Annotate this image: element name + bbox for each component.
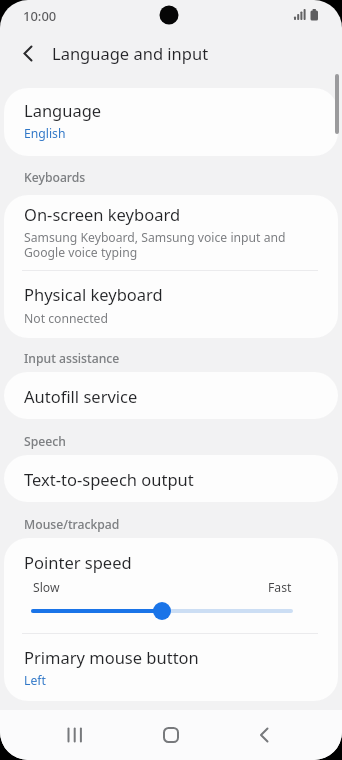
staticText: Physical keyboard bbox=[24, 283, 163, 305]
staticText: Left bbox=[24, 672, 46, 689]
staticText: On-screen keyboard bbox=[24, 203, 181, 225]
staticText: Primary mouse button bbox=[24, 646, 199, 668]
staticText: Slow bbox=[33, 579, 60, 596]
button[interactable] bbox=[10, 36, 46, 70]
staticText: English bbox=[24, 125, 66, 142]
staticText: Fast bbox=[268, 579, 292, 596]
staticText: Autofill service bbox=[24, 385, 138, 407]
staticText: 10:00 bbox=[23, 7, 57, 25]
button[interactable]: On-screen keyboard bbox=[4, 195, 338, 270]
staticText: Keyboards bbox=[24, 169, 86, 186]
staticText: Not connected bbox=[24, 310, 108, 327]
button[interactable]: Primary mouse button bbox=[4, 634, 338, 701]
staticText: Input assistance bbox=[24, 350, 120, 367]
button[interactable] bbox=[52, 712, 98, 758]
button[interactable]: Pointer speed bbox=[4, 538, 338, 633]
button[interactable] bbox=[148, 712, 194, 758]
staticText: Samsung Keyboard, Samsung voice input an… bbox=[24, 229, 286, 261]
staticText: Mouse/trackpad bbox=[24, 516, 120, 533]
button[interactable]: Language bbox=[4, 88, 338, 156]
staticText: Pointer speed bbox=[24, 551, 132, 573]
staticText: Language bbox=[24, 99, 102, 121]
button[interactable]: Text-to-speech output bbox=[4, 455, 338, 502]
button[interactable]: Physical keyboard bbox=[4, 271, 338, 338]
staticText: Language and input bbox=[52, 42, 209, 64]
staticText: Text-to-speech output bbox=[24, 468, 194, 490]
button[interactable] bbox=[242, 712, 288, 758]
button[interactable]: Autofill service bbox=[4, 372, 338, 419]
staticText: Speech bbox=[24, 433, 66, 450]
